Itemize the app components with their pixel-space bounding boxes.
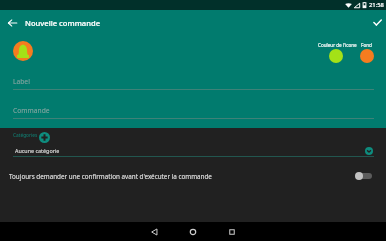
button[interactable]: Back: [139, 222, 169, 241]
button[interactable]: Command icon: [13, 41, 33, 61]
button[interactable]: Label: [13, 76, 374, 105]
button[interactable]: Save: [365, 10, 386, 35]
staticText: Nouvelle commande: [25, 18, 101, 28]
staticText: Commande: [13, 106, 50, 115]
button[interactable]: Navigate up: [0, 10, 25, 35]
staticText: Fond: [361, 42, 372, 48]
staticText: Aucune catégorie: [15, 147, 60, 154]
button[interactable]: Toujours demander une confirmation avant…: [9, 169, 372, 183]
button[interactable]: Home: [178, 222, 208, 241]
button[interactable]: Add category: [39, 132, 50, 143]
staticText: Toujours demander une confirmation avant…: [9, 172, 212, 181]
staticText: Catégories: [13, 132, 38, 139]
button[interactable]: Icon colour: [329, 49, 343, 63]
button[interactable]: Aucune catégorie: [13, 146, 374, 158]
staticText: Couleur de l'icone: [318, 42, 357, 48]
button[interactable]: Commande: [13, 105, 374, 128]
button[interactable]: Recent apps: [217, 222, 247, 241]
staticText: 21:58: [369, 1, 384, 9]
button[interactable]: Background colour: [360, 49, 374, 63]
staticText: Label: [13, 77, 30, 86]
